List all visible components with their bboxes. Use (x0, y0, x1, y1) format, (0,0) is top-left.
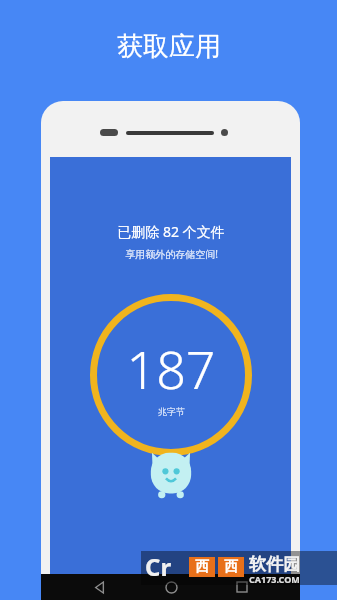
staticText: 软件园 (249, 554, 300, 575)
button[interactable]: Home (161, 577, 181, 597)
staticText: 兆字节 (158, 406, 185, 417)
staticText: 享用额外的存储空间! (125, 247, 218, 261)
button[interactable]: 获取应用 (117, 30, 221, 63)
button[interactable]: Back (89, 577, 109, 597)
staticText: 187 (126, 333, 216, 404)
staticText: Cr (145, 550, 172, 583)
staticText: 西 (195, 558, 209, 576)
staticText: 获取应用 (117, 30, 221, 63)
staticText: 西 (224, 558, 238, 576)
button[interactable]: Recents (232, 577, 252, 597)
other: Mascot (143, 447, 199, 505)
staticText: CA173.COM (249, 573, 300, 585)
staticText: 已删除 82 个文件 (117, 222, 225, 241)
